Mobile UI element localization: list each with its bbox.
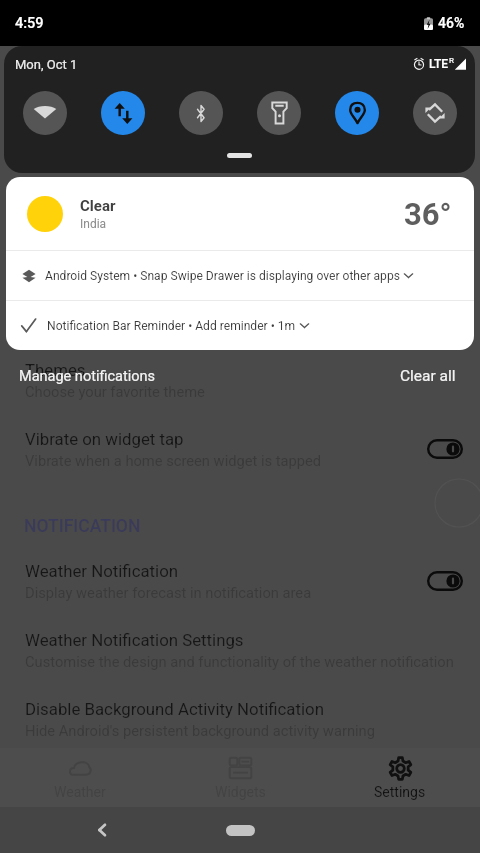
button[interactable]: Weather Notification Settings (0, 624, 480, 676)
button[interactable]: Weather Notification (0, 555, 480, 607)
staticText: Widgets (215, 784, 266, 800)
button[interactable]: Vibrate on widget tap (0, 423, 480, 475)
button[interactable]: Notification Bar Reminder • Add reminder… (6, 301, 474, 350)
staticText: R (449, 56, 454, 65)
staticText: Settings (374, 784, 426, 800)
staticText: Weather Notification Settings (25, 630, 244, 650)
button[interactable]: Android System • Snap Swipe Drawer is di… (6, 251, 474, 300)
staticText: Hide Android's persistent background act… (25, 722, 375, 739)
staticText: 46% (438, 15, 465, 31)
button[interactable]: Clear (6, 177, 474, 250)
staticText: Clear (80, 197, 116, 215)
button[interactable]: Quick setting (335, 91, 379, 135)
staticText: Weather Notification (25, 561, 179, 581)
staticText: Themes (25, 360, 86, 380)
staticText: Disable Background Activity Notification (25, 699, 324, 719)
staticText: 4:59 (15, 15, 44, 32)
staticText: Android System • Snap Swipe Drawer is di… (45, 269, 400, 283)
staticText: Notification Bar Reminder • Add reminder… (47, 319, 296, 333)
staticText: Vibrate when a home screen widget is tap… (25, 452, 322, 469)
button[interactable]: Quick setting (257, 91, 301, 135)
button[interactable]: Back (86, 814, 118, 846)
staticText: 36° (404, 196, 452, 232)
button[interactable]: Quick setting (23, 91, 67, 135)
button[interactable]: Settings (320, 748, 480, 807)
button[interactable]: Manage notifications (19, 368, 155, 385)
staticText: India (80, 217, 107, 231)
staticText: NOTIFICATION (24, 516, 141, 537)
staticText: LTE (429, 57, 449, 71)
button[interactable]: Themes (0, 354, 480, 406)
button[interactable]: Quick setting (179, 91, 223, 135)
staticText: Customise the design and functionality o… (25, 653, 454, 670)
staticText: Weather (54, 784, 106, 800)
staticText: Vibrate on widget tap (25, 429, 184, 449)
button[interactable]: Quick setting (101, 91, 145, 135)
staticText: Choose your favorite theme (25, 383, 205, 400)
staticText: Display weather forecast in notification… (25, 584, 312, 601)
button[interactable]: Disable Background Activity Notification (0, 693, 480, 745)
button[interactable]: Quick setting (413, 91, 457, 135)
button[interactable]: Home (226, 825, 255, 836)
staticText: Mon, Oct 1 (15, 57, 78, 72)
button[interactable]: Clear all (400, 367, 456, 385)
